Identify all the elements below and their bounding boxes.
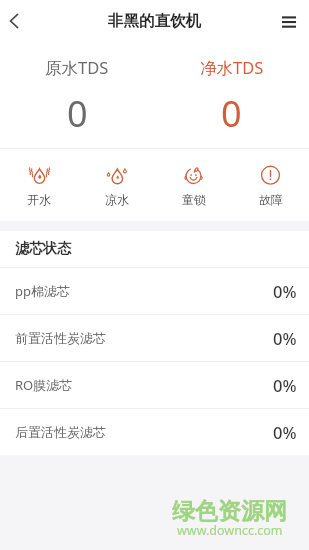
staticText: 0%	[273, 327, 297, 349]
button[interactable]: 故障	[232, 149, 309, 221]
staticText: 滤芯状态	[15, 240, 71, 258]
staticText: RO膜滤芯	[15, 376, 73, 394]
staticText: 0%	[273, 421, 297, 443]
staticText: 非黑的直饮机	[108, 11, 201, 31]
staticText: 故障	[259, 192, 283, 207]
staticText: 开水	[27, 192, 51, 207]
staticText: 0	[221, 89, 242, 138]
staticText: 净水TDS	[200, 56, 264, 79]
staticText: pp棉滤芯	[15, 282, 70, 300]
button[interactable]: RO膜滤芯	[0, 362, 309, 408]
button[interactable]: 凉水	[78, 149, 155, 221]
staticText: 绿色资源网	[172, 497, 287, 526]
staticText: 原水TDS	[45, 56, 109, 79]
staticText: 后置活性炭滤芯	[15, 424, 106, 440]
staticText: 童锁	[182, 192, 206, 207]
staticText: 0%	[273, 280, 297, 302]
button[interactable]: 开水	[0, 149, 78, 221]
button[interactable]: 后置活性炭滤芯	[0, 409, 309, 455]
staticText: 前置活性炭滤芯	[15, 330, 106, 346]
staticText: 凉水	[105, 192, 129, 207]
button[interactable]: 前置活性炭滤芯	[0, 315, 309, 361]
staticText: 0	[67, 89, 88, 138]
button[interactable]: pp棉滤芯	[0, 268, 309, 314]
staticText: www.downcc.com	[177, 522, 283, 539]
button[interactable]: Menu	[267, 0, 309, 42]
button[interactable]: Back	[0, 0, 32, 42]
staticText: 0%	[273, 374, 297, 396]
button[interactable]: 童锁	[155, 149, 232, 221]
